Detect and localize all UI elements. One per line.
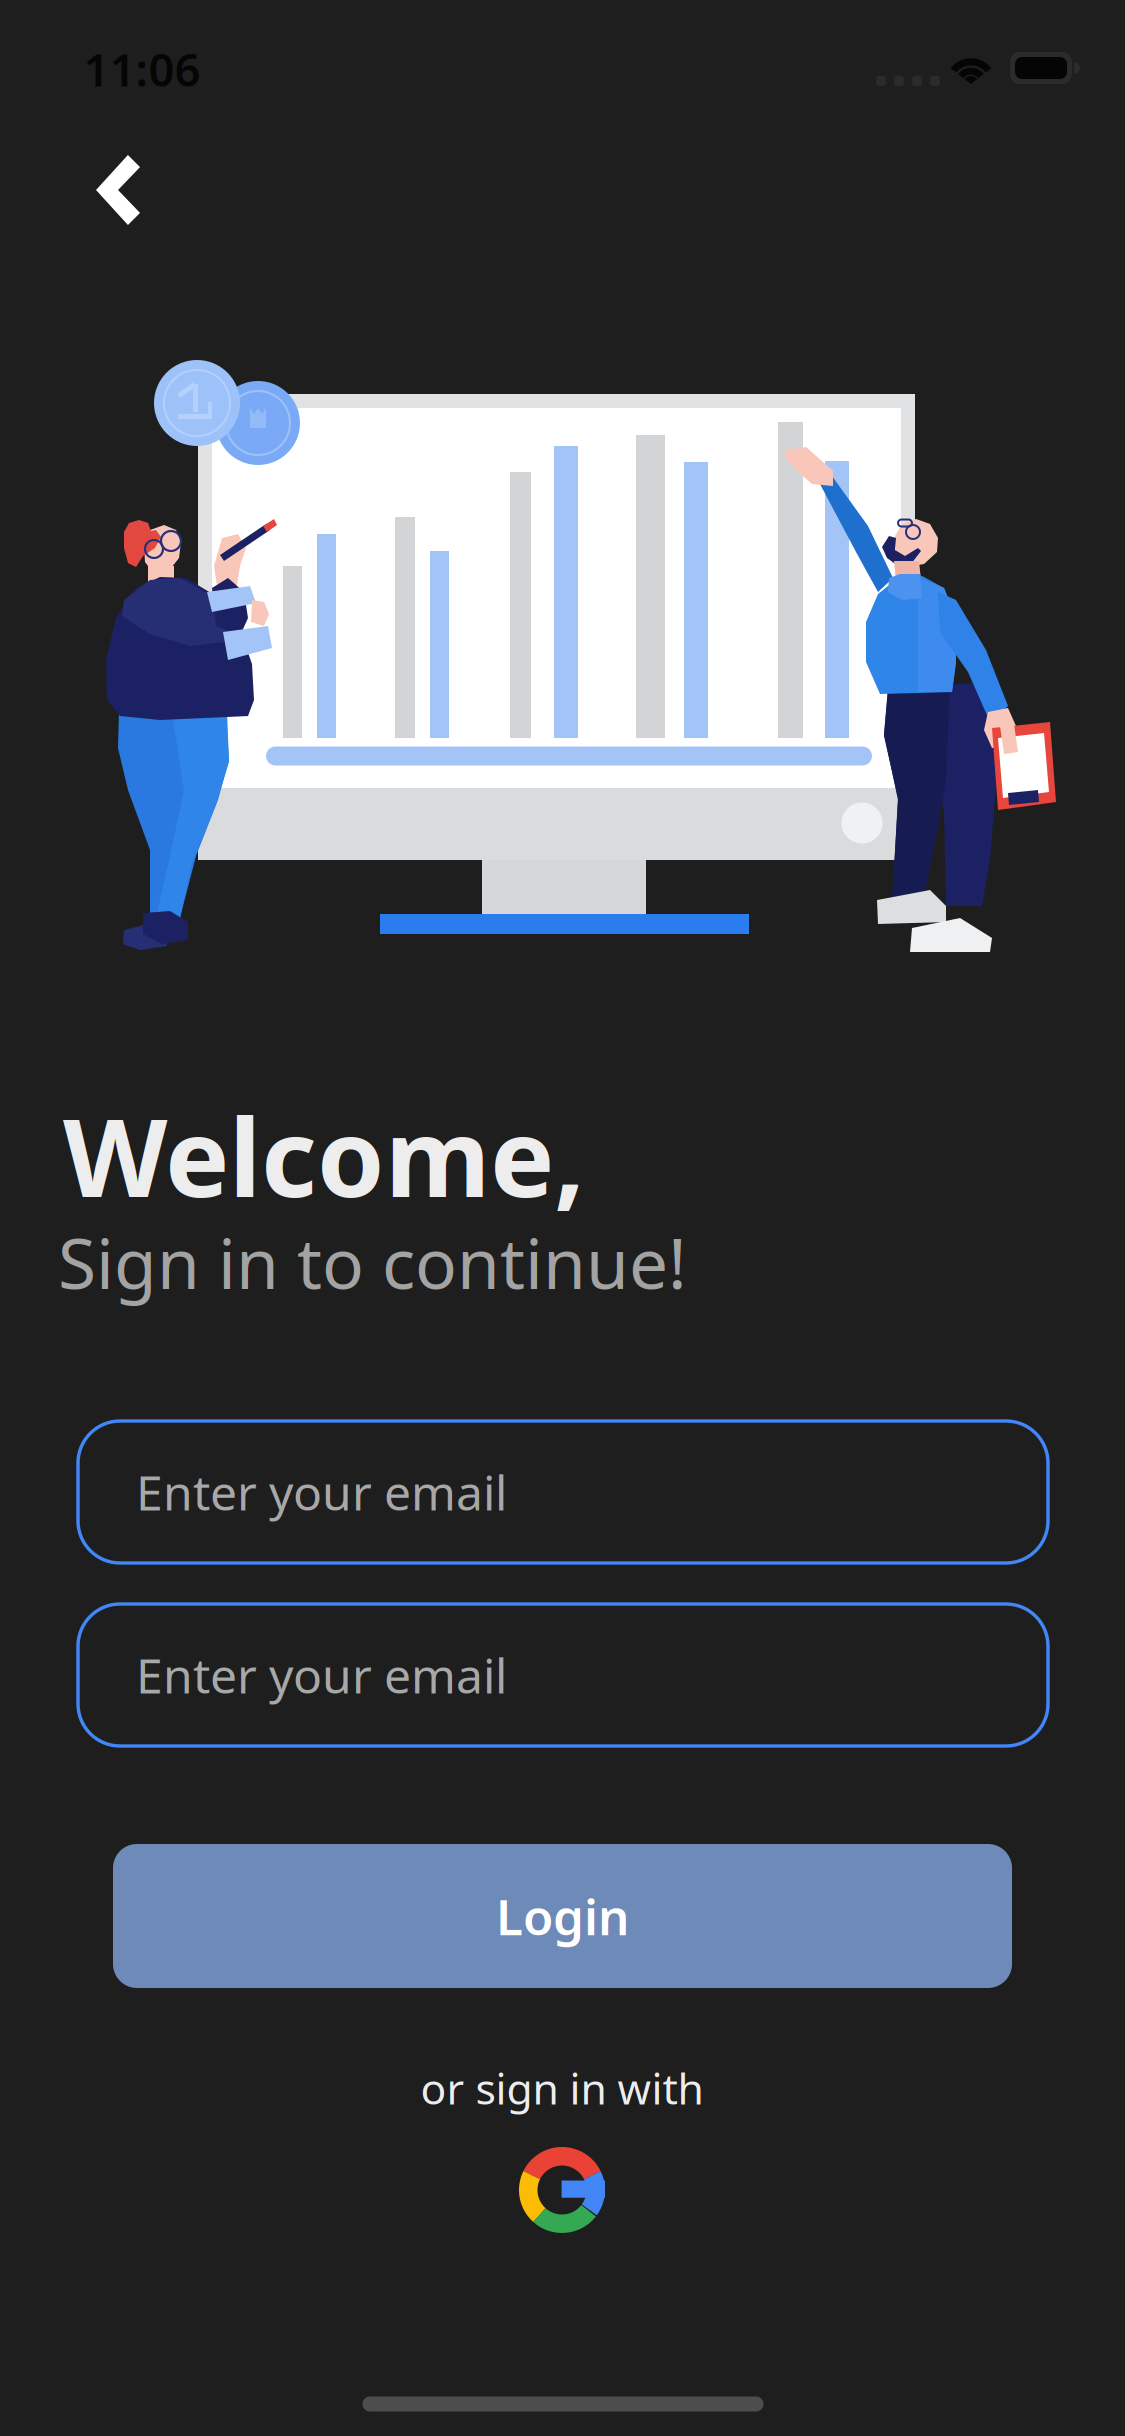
staticText: Enter your email xyxy=(136,1460,507,1524)
button[interactable]: Sign in with Google xyxy=(505,2133,619,2247)
button[interactable]: Login xyxy=(113,1844,1012,1988)
button[interactable]: Enter your email xyxy=(78,1421,1048,1563)
staticText: 11:06 xyxy=(83,39,200,99)
staticText: Login xyxy=(496,1883,629,1949)
button[interactable]: Enter your email xyxy=(78,1604,1048,1746)
staticText: Enter your email xyxy=(136,1643,507,1707)
staticText: or sign in with xyxy=(420,2060,703,2116)
staticText: Sign in to continue! xyxy=(58,1216,687,1308)
button[interactable]: Back xyxy=(74,133,162,247)
staticText: Welcome, xyxy=(63,1083,585,1227)
